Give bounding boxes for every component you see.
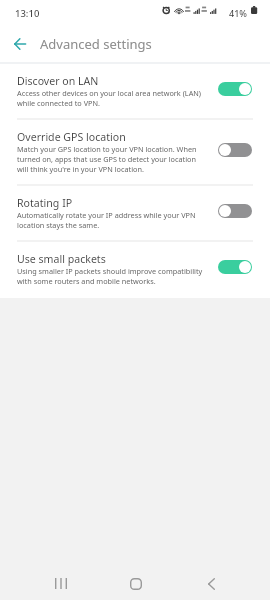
button[interactable]: Rotating IP xyxy=(0,186,270,242)
staticText: 13:10 xyxy=(15,7,40,20)
button[interactable]: Home xyxy=(106,567,166,600)
staticText: Advanced settings xyxy=(40,35,152,53)
button[interactable]: Rotating IP, off xyxy=(218,204,252,218)
button[interactable]: Discover on LAN xyxy=(0,64,270,120)
staticText: Use small packets xyxy=(17,252,106,266)
staticText: 41% xyxy=(229,7,247,19)
staticText: Discover on LAN xyxy=(17,74,99,88)
button[interactable]: Back xyxy=(6,30,34,58)
button[interactable]: Back xyxy=(181,567,241,600)
button[interactable]: Discover on LAN, on xyxy=(218,82,252,96)
button[interactable]: Use small packets, on xyxy=(218,260,252,274)
staticText: Rotating IP xyxy=(17,196,73,210)
button[interactable]: Override GPS location, off xyxy=(218,143,252,157)
button[interactable]: Recent apps xyxy=(31,567,91,600)
staticText: Using smaller IP packets should improve … xyxy=(17,266,203,286)
button[interactable]: Override GPS location xyxy=(0,120,270,186)
staticText: Automatically rotate your IP address whi… xyxy=(17,210,203,230)
staticText: Match your GPS location to your VPN loca… xyxy=(17,144,203,174)
staticText: Access other devices on your local area … xyxy=(17,88,203,108)
staticText: Override GPS location xyxy=(17,130,126,144)
button[interactable]: Use small packets xyxy=(0,242,270,298)
